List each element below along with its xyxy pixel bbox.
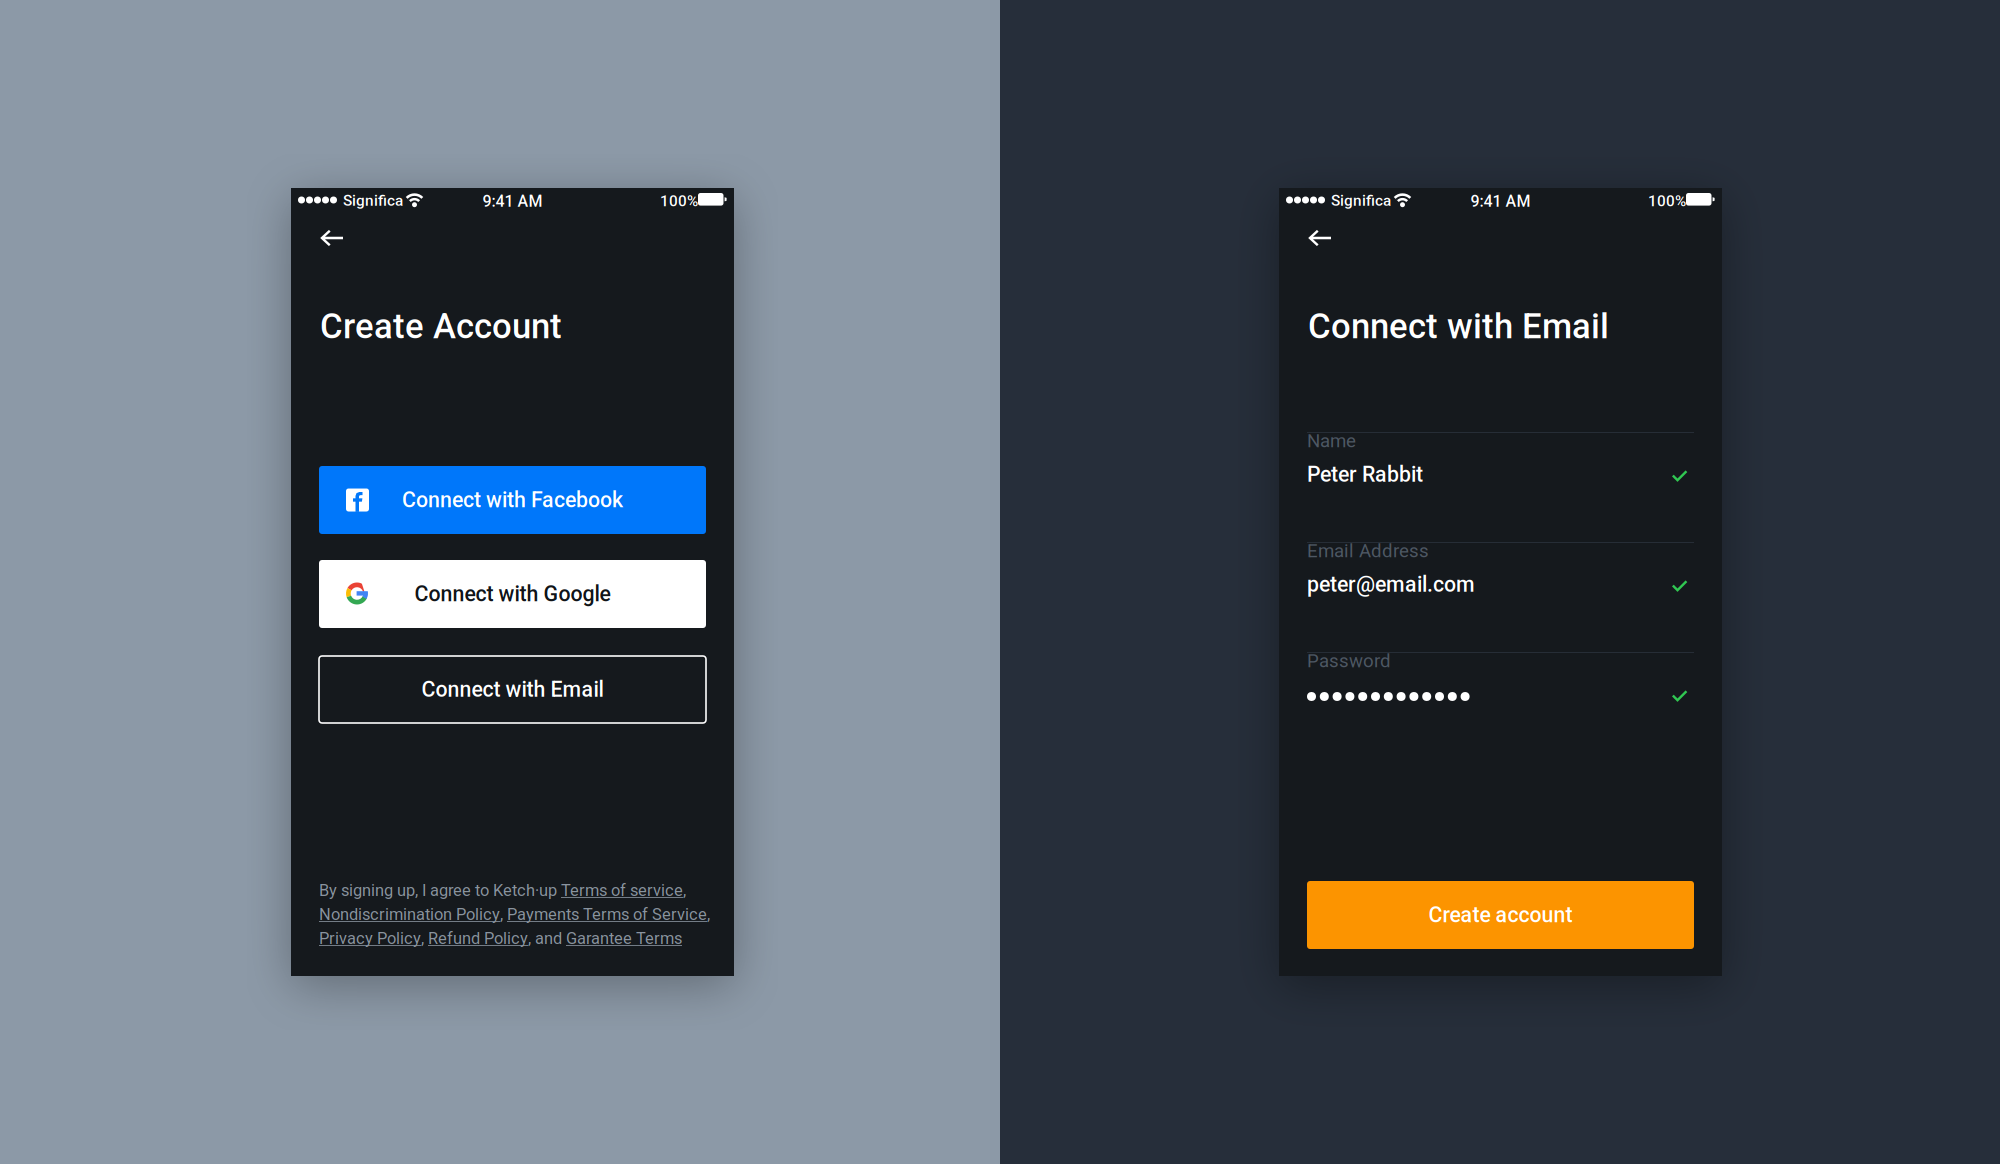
staticText: peter@email.com (1307, 572, 1475, 597)
staticText: 9:41 AM (482, 192, 542, 211)
button[interactable]: Nondiscrimination Policy, Payments Terms… (319, 905, 710, 924)
staticText: Connect with Email (1308, 306, 1609, 347)
staticText: 100% (660, 192, 698, 210)
button[interactable]: Back (291, 221, 365, 267)
staticText: Create Account (320, 306, 562, 347)
staticText: By signing up, I agree to Ketch·up Terms… (319, 881, 686, 900)
staticText: Password (1307, 650, 1391, 672)
staticText: Peter Rabbit (1307, 462, 1423, 487)
button[interactable]: Back (1279, 221, 1353, 267)
staticText: Significa (1331, 191, 1391, 209)
staticText: Significa (343, 191, 403, 209)
button[interactable]: Privacy Policy, Refund Policy, and Garan… (319, 929, 682, 948)
staticText: Create account (1428, 902, 1572, 927)
button[interactable]: Create account (1307, 881, 1694, 949)
staticText: Connect with Google (414, 581, 610, 606)
staticText: Name (1307, 430, 1356, 452)
button[interactable]: Connect with Email (319, 656, 706, 723)
staticText: Nondiscrimination Policy, Payments Terms… (319, 905, 710, 924)
staticText: Connect with Facebook (402, 487, 623, 512)
staticText: 100% (1648, 192, 1686, 210)
button[interactable]: Connect with Facebook (319, 466, 706, 534)
staticText: Privacy Policy, Refund Policy, and Garan… (319, 929, 682, 948)
staticText: 9:41 AM (1470, 192, 1530, 211)
button[interactable]: Connect with Google (319, 560, 706, 628)
staticText: Email Address (1307, 540, 1429, 562)
button[interactable]: By signing up, I agree to Ketch·up Terms… (319, 881, 686, 900)
staticText: Connect with Email (421, 677, 603, 702)
